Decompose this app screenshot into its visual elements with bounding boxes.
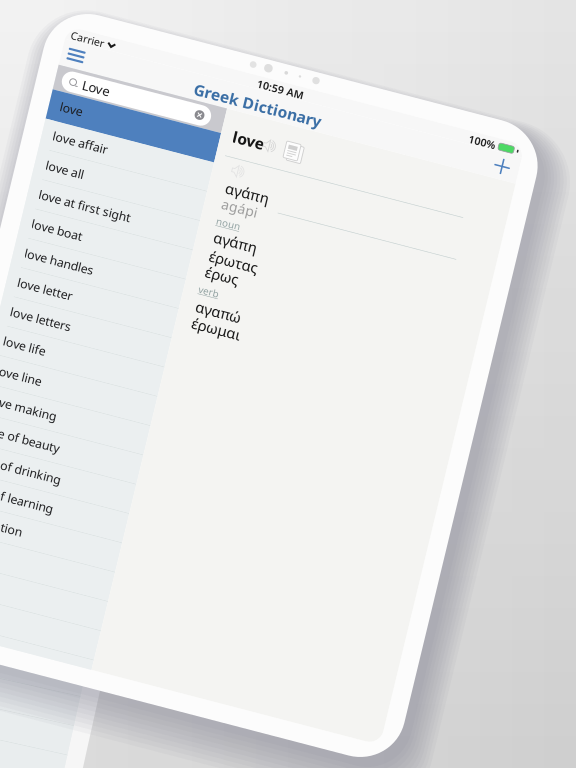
staticText: love	[48, 149, 86, 175]
button[interactable]: love all	[30, 238, 313, 288]
staticText: αγάπη	[341, 207, 414, 239]
button[interactable]: love making	[30, 638, 313, 688]
staticText: agápi	[341, 235, 401, 266]
staticText: love of drinking	[48, 749, 192, 768]
staticText: love letters	[48, 499, 150, 525]
button[interactable]: love	[30, 138, 313, 188]
staticText: love all	[48, 249, 112, 275]
button[interactable]: love handles	[30, 388, 313, 438]
staticText: Greek Dictionary	[253, 61, 466, 95]
button[interactable]: love at first sight	[30, 288, 313, 338]
button[interactable]: Menu	[30, 52, 78, 96]
staticText: love affair	[48, 199, 140, 225]
button[interactable]: love affair	[30, 188, 313, 238]
button[interactable]: love boat	[30, 338, 313, 388]
button[interactable]: love letter	[30, 438, 313, 488]
button[interactable]: love life	[30, 538, 313, 588]
staticText: Carrier	[38, 31, 94, 54]
staticText: με ελατήρι...	[52, 191, 176, 219]
staticText: love making	[48, 649, 161, 675]
button[interactable]: love line	[30, 588, 313, 638]
staticText: love line	[48, 599, 124, 625]
staticText: love handles	[48, 399, 164, 425]
staticText: Love	[75, 104, 121, 132]
button[interactable]: love of beauty	[30, 688, 313, 738]
button[interactable]: Search field: Love	[41, 101, 291, 135]
button[interactable]: love of drinking	[30, 738, 313, 768]
staticText: love of beauty	[48, 699, 178, 725]
staticText: love letter	[48, 449, 140, 475]
button[interactable]: love letters	[30, 488, 313, 538]
staticText: love at first sight	[48, 299, 202, 325]
button[interactable]: Pronounce translation	[339, 179, 369, 205]
